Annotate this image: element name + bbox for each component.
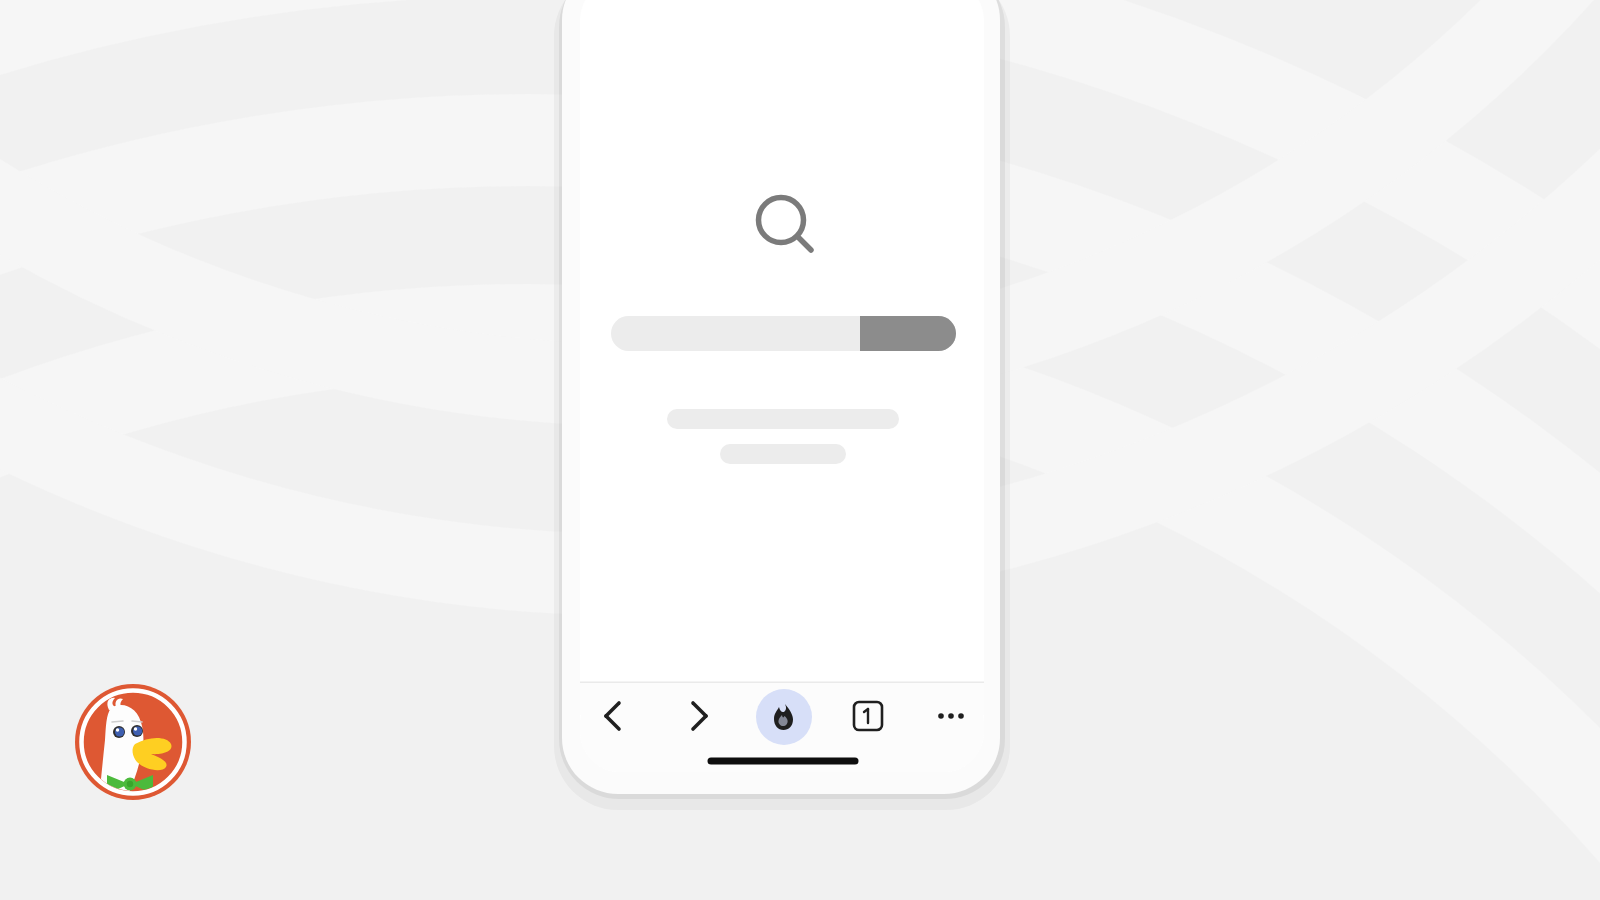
button[interactable]: Forward	[677, 693, 723, 739]
button[interactable]: DuckDuckGo	[74, 684, 194, 804]
button[interactable]: Fire button, clear browsing data	[757, 690, 813, 746]
button[interactable]: More options	[928, 693, 974, 739]
button[interactable]: Tabs, 1 open	[844, 693, 890, 739]
button[interactable]: Back	[590, 693, 636, 739]
